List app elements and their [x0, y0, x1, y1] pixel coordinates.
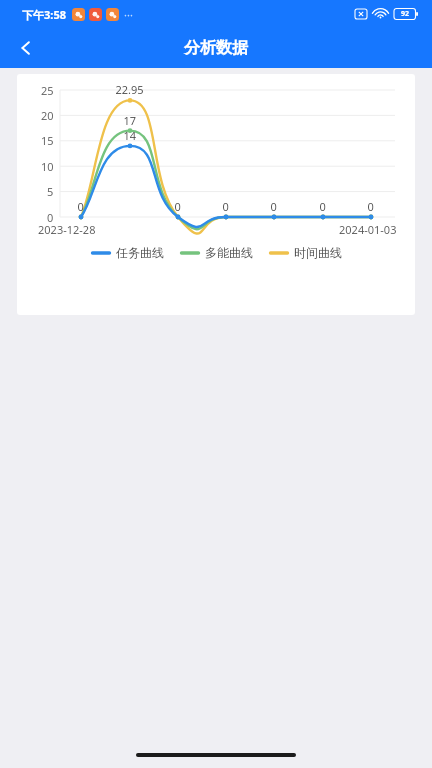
- staticText: 时间曲线: [294, 245, 342, 260]
- staticText: ···: [124, 7, 133, 22]
- button[interactable]: 任务曲线: [17, 74, 415, 315]
- button[interactable]: 多能曲线: [180, 245, 253, 260]
- staticText: 任务曲线: [116, 245, 164, 260]
- staticText: 多能曲线: [205, 245, 253, 260]
- staticText: 92: [401, 9, 410, 19]
- staticText: 分析数据: [184, 38, 248, 58]
- button[interactable]: Back: [8, 30, 44, 66]
- staticText: 下午3:58: [22, 7, 66, 22]
- button[interactable]: 时间曲线: [269, 245, 342, 260]
- button[interactable]: 任务曲线: [91, 245, 164, 260]
